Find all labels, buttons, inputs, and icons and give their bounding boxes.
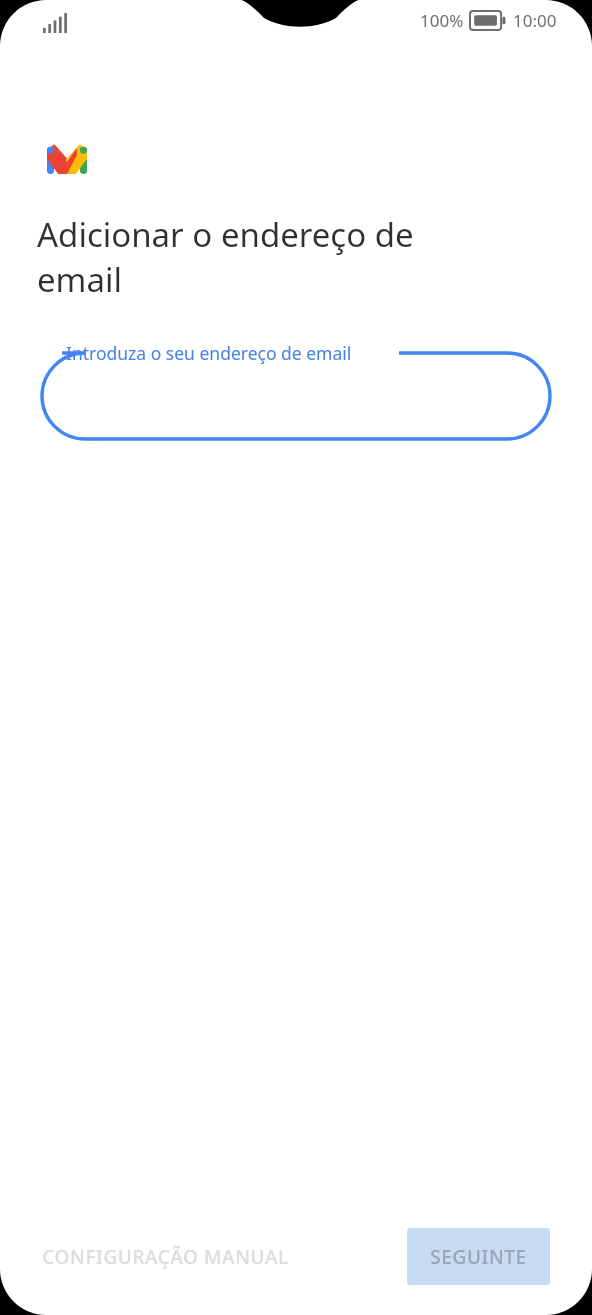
staticText: SEGUINTE [430, 1244, 527, 1270]
staticText: Adicionar o endereço de email [37, 212, 487, 301]
other: Battery full [470, 11, 506, 30]
button[interactable]: SEGUINTE [407, 1228, 550, 1285]
staticText: Introduza o seu endereço de email [66, 341, 352, 365]
button[interactable] [42, 353, 550, 439]
button[interactable]: CONFIGURAÇÃO MANUAL [28, 1232, 303, 1282]
staticText: 10:00 [513, 9, 557, 32]
staticText: CONFIGURAÇÃO MANUAL [42, 1244, 289, 1270]
other: Signal strength [43, 13, 67, 33]
other: Gmail [47, 143, 87, 174]
staticText: 100% [420, 9, 464, 32]
